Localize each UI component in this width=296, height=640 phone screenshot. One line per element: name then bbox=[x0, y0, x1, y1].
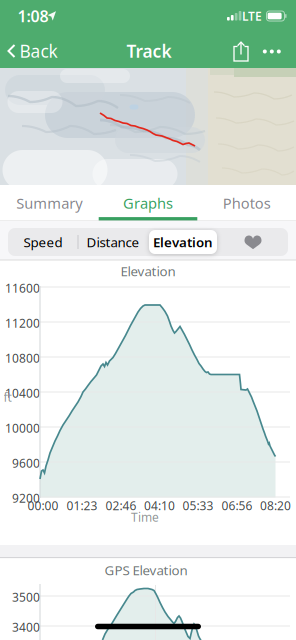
button[interactable]: Graphs bbox=[99, 185, 197, 221]
staticText: 02:46 bbox=[105, 497, 136, 513]
button[interactable]: Speed bbox=[8, 228, 77, 256]
staticText: 01:23 bbox=[66, 497, 97, 513]
staticText: 04:10 bbox=[144, 497, 175, 513]
staticText: 11600 bbox=[5, 280, 40, 296]
button[interactable]: Favorite bbox=[218, 229, 288, 255]
staticText: GPS Elevation bbox=[104, 561, 187, 579]
staticText: Elevation bbox=[153, 233, 213, 251]
staticText: 9600 bbox=[12, 455, 40, 471]
button[interactable]: Photos bbox=[197, 185, 296, 221]
staticText: Summary bbox=[16, 193, 82, 213]
staticText: 05:33 bbox=[182, 497, 213, 513]
staticText: Time bbox=[131, 509, 159, 525]
button[interactable]: More bbox=[259, 34, 285, 68]
staticText: Speed bbox=[23, 233, 62, 251]
staticText: Photos bbox=[223, 193, 271, 213]
staticText: 3400 bbox=[12, 619, 40, 635]
staticText: 06:56 bbox=[221, 497, 252, 513]
staticText: LTE bbox=[242, 8, 262, 24]
staticText: Back bbox=[19, 39, 57, 62]
button[interactable]: Summary bbox=[0, 185, 99, 221]
staticText: ft bbox=[3, 389, 11, 405]
staticText: 3500 bbox=[12, 589, 40, 605]
button[interactable]: Share bbox=[226, 34, 256, 68]
staticText: 08:20 bbox=[260, 497, 291, 513]
staticText: Graphs bbox=[123, 193, 173, 213]
staticText: 00:00 bbox=[27, 497, 58, 513]
staticText: 1:08 bbox=[17, 5, 48, 27]
staticText: Elevation bbox=[120, 262, 175, 280]
button[interactable]: Distance bbox=[78, 228, 147, 256]
staticText: 10000 bbox=[5, 420, 40, 436]
button[interactable]: Elevation bbox=[148, 228, 217, 256]
staticText: Track bbox=[126, 39, 171, 62]
staticText: 10800 bbox=[5, 350, 40, 366]
staticText: Distance bbox=[86, 233, 139, 251]
staticText: 10400 bbox=[5, 385, 40, 401]
staticText: 11200 bbox=[5, 315, 40, 331]
button[interactable]: Back bbox=[6, 32, 58, 70]
staticText: 9200 bbox=[12, 490, 40, 506]
